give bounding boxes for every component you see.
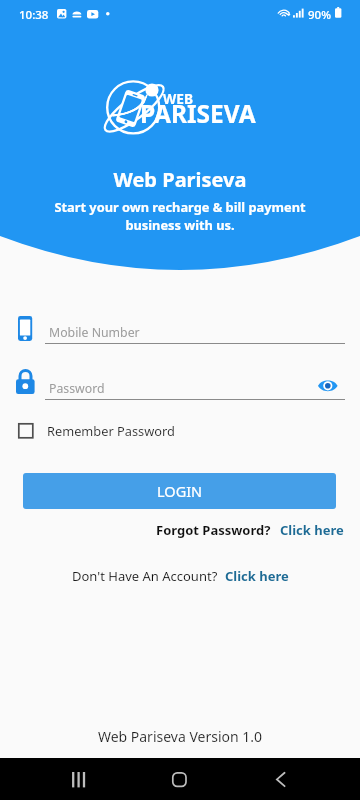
staticText: Remember Password: [47, 422, 175, 439]
staticText: Mobile Number: [49, 324, 140, 341]
button[interactable]: Click here: [280, 521, 344, 539]
button[interactable]: Home: [159, 760, 200, 798]
button[interactable]: Remember Password: [14, 418, 179, 443]
staticText: PARISEVA: [140, 97, 256, 130]
staticText: 10:38: [19, 7, 49, 23]
staticText: 90%: [308, 7, 331, 23]
staticText: Password: [49, 380, 105, 397]
button[interactable]: Recents: [58, 760, 99, 798]
staticText: Start your own recharge & bill payment b…: [0, 198, 360, 234]
button[interactable]: LOGIN: [23, 473, 336, 509]
staticText: Web Pariseva: [0, 166, 360, 193]
staticText: WEB: [163, 89, 194, 108]
staticText: Don't Have An Account?: [72, 567, 218, 585]
staticText: LOGIN: [157, 481, 203, 501]
staticText: Web Pariseva Version 1.0: [0, 727, 360, 746]
button[interactable]: Click here: [225, 567, 289, 585]
button[interactable]: Show password: [315, 373, 341, 399]
button[interactable]: Back: [260, 760, 301, 798]
staticText: Forgot Password?: [156, 521, 271, 539]
